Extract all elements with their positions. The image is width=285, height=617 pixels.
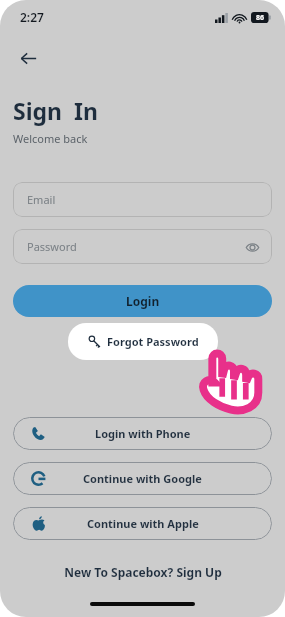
- staticText: Sign In: [13, 95, 98, 126]
- staticText: Continue with Google: [83, 471, 202, 486]
- button[interactable]: Continue with Google: [13, 462, 272, 495]
- button[interactable]: Password: [13, 229, 272, 264]
- button[interactable]: Continue with Apple: [13, 507, 272, 540]
- button[interactable]: Email: [13, 182, 272, 217]
- staticText: Email: [27, 192, 56, 207]
- staticText: 2:27: [20, 9, 44, 25]
- staticText: Login with Phone: [95, 426, 191, 441]
- staticText: Continue with Apple: [87, 516, 199, 531]
- staticText: Login: [126, 293, 160, 309]
- button[interactable]: Login: [13, 285, 272, 317]
- button[interactable]: Forgot Password: [68, 323, 218, 360]
- button[interactable]: New To Spacebox? Sign Up: [13, 564, 272, 580]
- staticText: 86: [256, 13, 265, 23]
- staticText: Forgot Password: [107, 334, 199, 349]
- button[interactable]: Login with Phone: [13, 417, 272, 450]
- staticText: New To Spacebox? Sign Up: [64, 564, 222, 580]
- staticText: Password: [27, 239, 77, 254]
- button[interactable]: Show password: [243, 238, 261, 256]
- button[interactable]: Back: [10, 40, 46, 76]
- staticText: Welcome back: [13, 131, 88, 146]
